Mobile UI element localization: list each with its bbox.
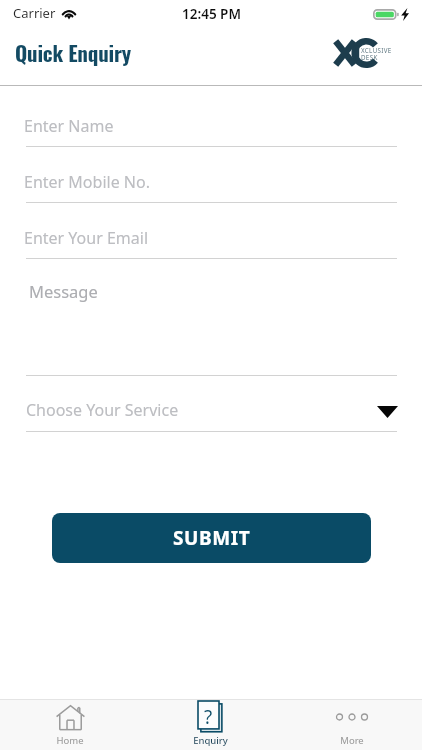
staticText: Enter Name [24,115,114,137]
staticText: DESK [361,53,378,61]
button[interactable]: Choose Your Service [26,390,397,429]
button[interactable]: Enter Mobile No. [26,164,397,203]
staticText: XCLUSIVE [361,46,392,54]
staticText: SUBMIT [173,525,251,551]
button[interactable]: More [281,700,422,750]
staticText: Enquiry [193,734,228,747]
button[interactable] [26,275,397,374]
button[interactable]: ? [140,700,281,750]
button[interactable]: Home [0,700,140,750]
staticText: 12:45 PM [182,5,241,23]
button[interactable]: Enter Name [26,108,397,147]
staticText: More [340,734,364,747]
staticText: Enter Mobile No. [24,171,150,193]
staticText: Home [56,734,84,747]
staticText: Choose Your Service [26,399,179,421]
button[interactable]: Enter Your Email [26,220,397,259]
staticText: ? [204,704,213,730]
staticText: Message [29,280,98,302]
button[interactable]: SUBMIT [52,513,371,563]
staticText: Quick Enquiry [15,37,131,68]
button[interactable]: Xclusive Desk logo [330,32,394,72]
staticText: Carrier [13,4,56,22]
staticText: Enter Your Email [24,227,149,249]
